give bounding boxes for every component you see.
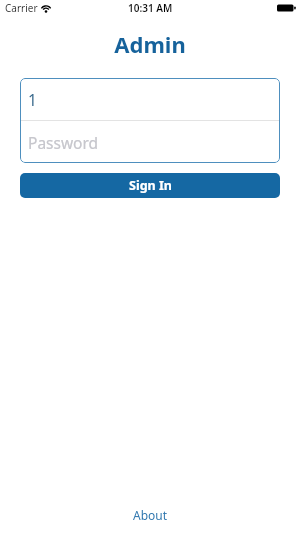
staticText: About [133,507,168,523]
staticText: Sign In [129,177,172,194]
button[interactable]: Sign In [20,173,280,198]
button[interactable]: Password [20,121,280,163]
staticText: 1 [28,89,37,110]
button[interactable]: 1 [20,78,280,120]
staticText: Password [28,132,99,153]
staticText: Carrier [5,1,38,15]
button[interactable]: About [133,507,168,523]
staticText: Admin [0,29,300,59]
staticText: 10:31 AM [128,1,173,15]
